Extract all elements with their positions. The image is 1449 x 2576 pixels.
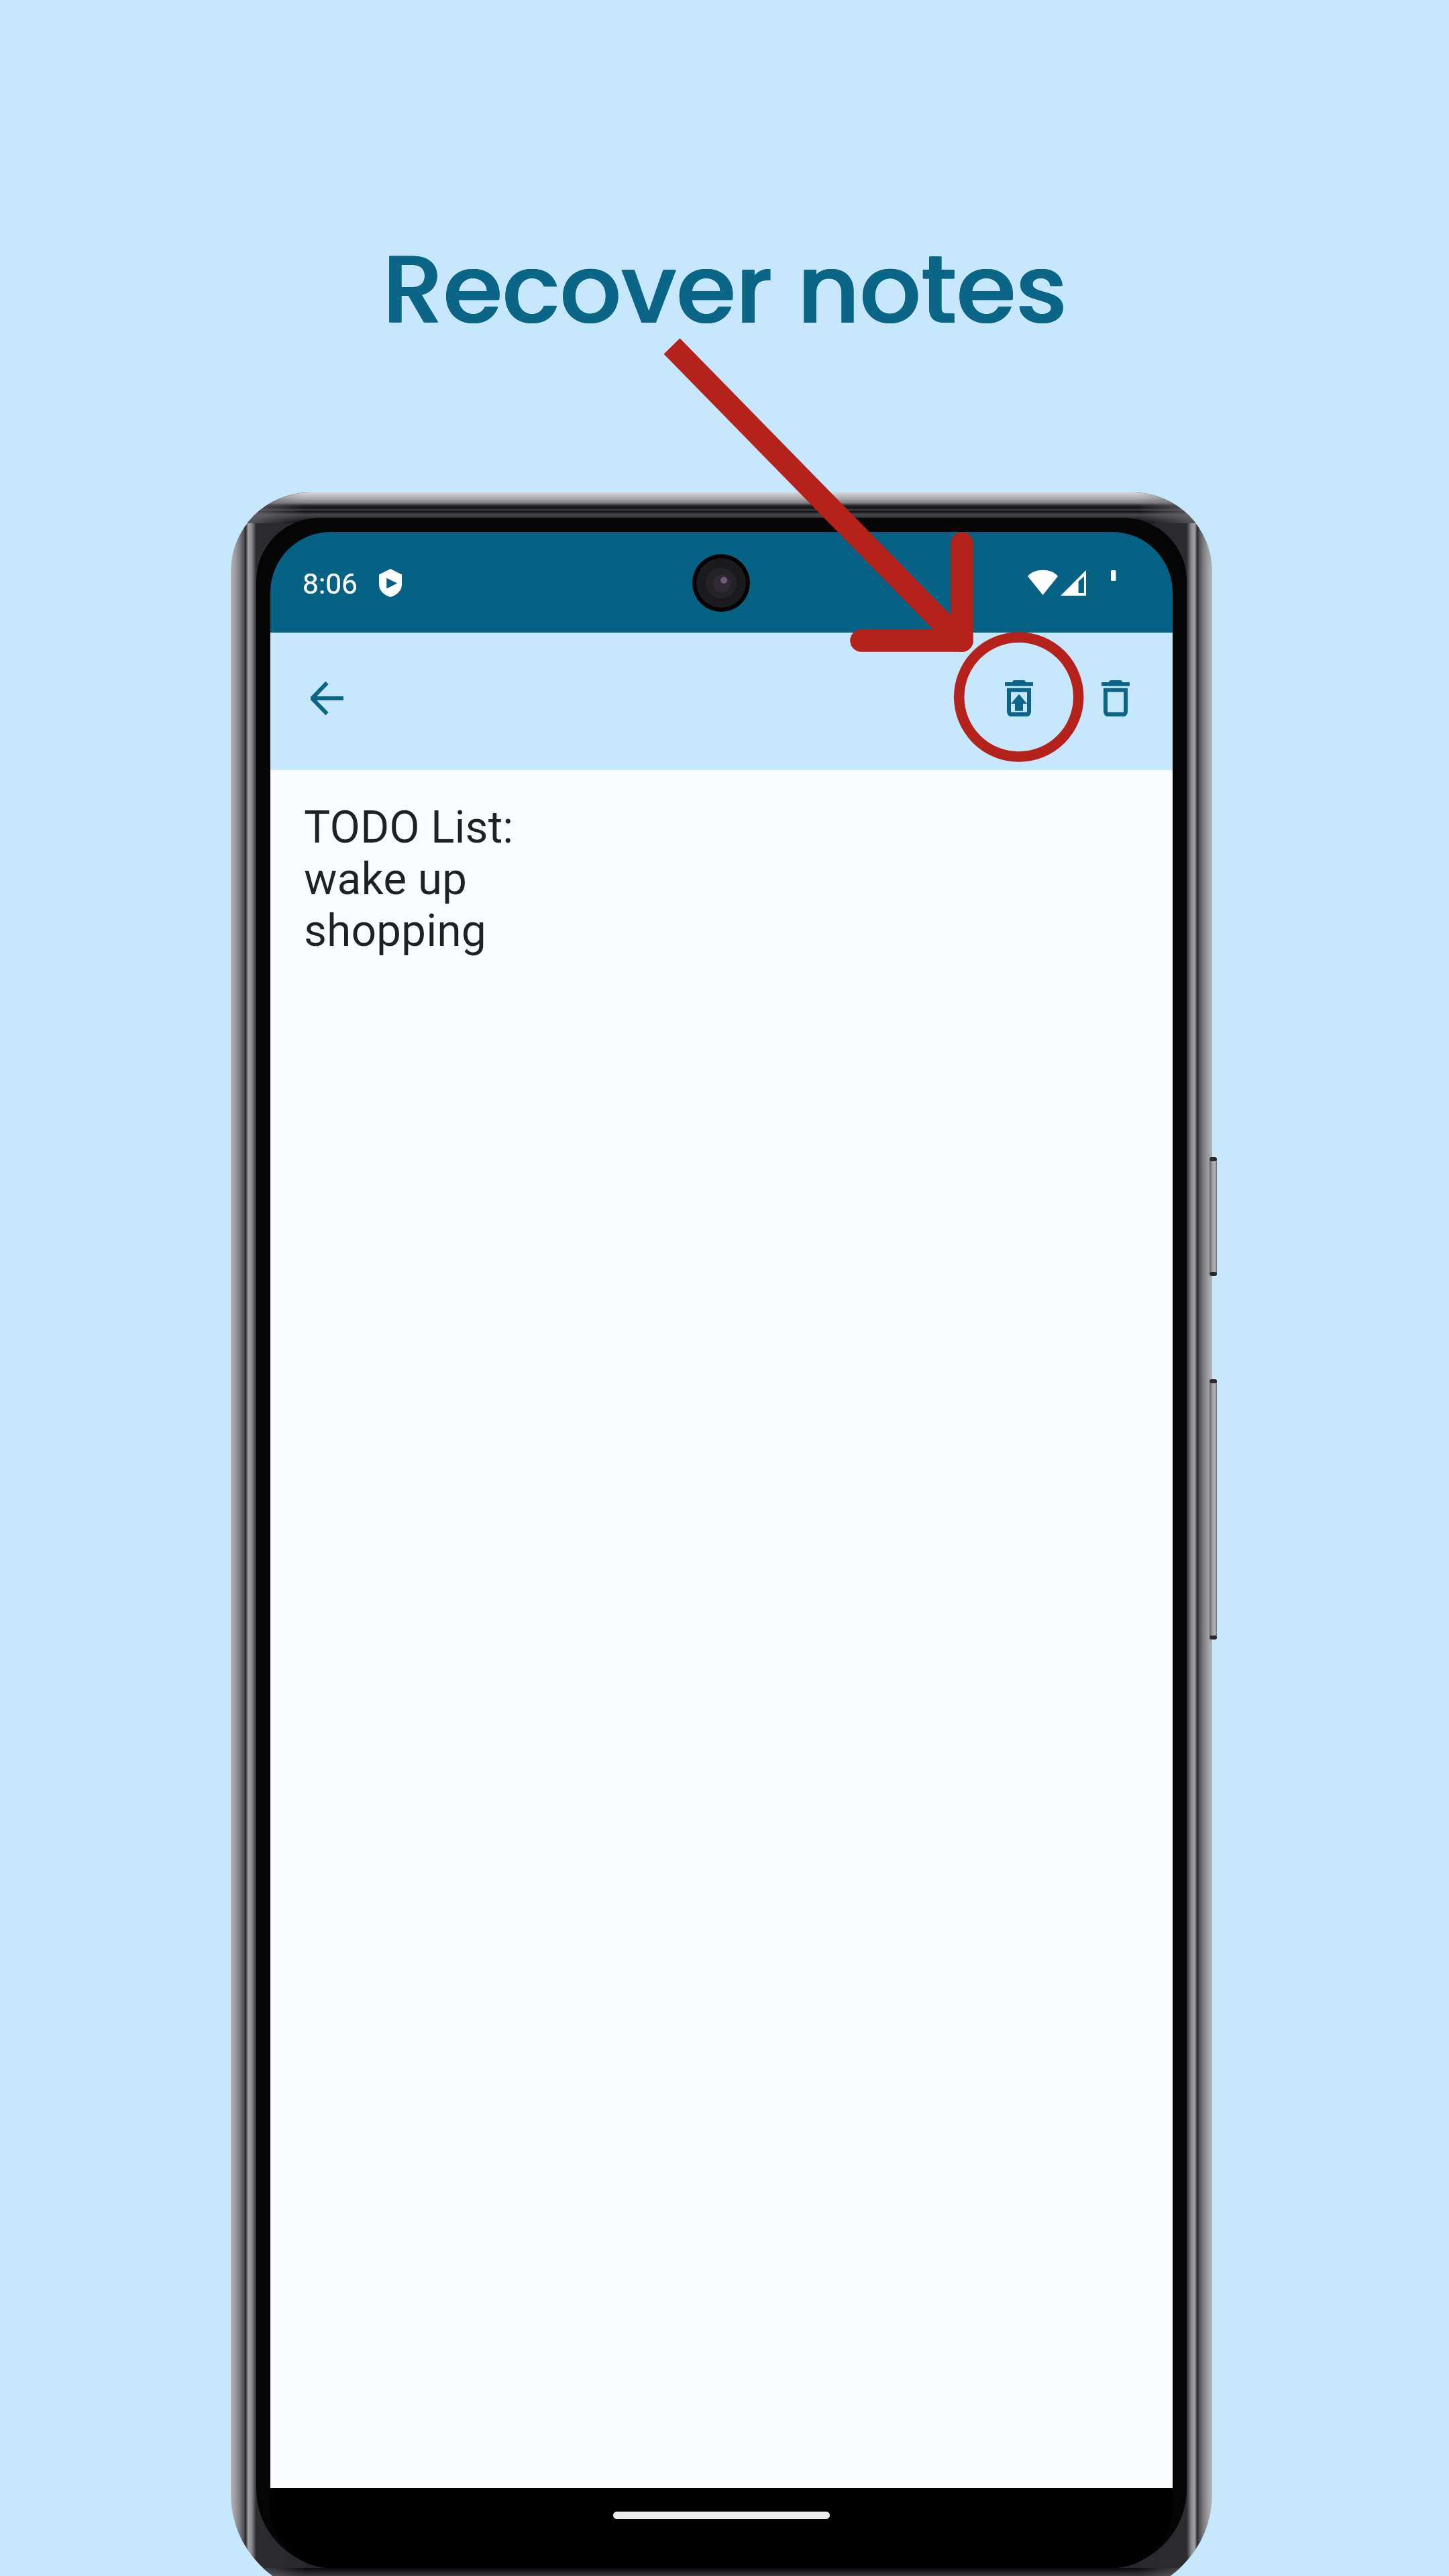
staticText: Recover notes bbox=[382, 222, 1067, 356]
staticText: Recover notes bbox=[383, 222, 1068, 356]
button[interactable]: Note body bbox=[270, 770, 1173, 2488]
button[interactable]: Back bbox=[282, 654, 371, 743]
staticText: 8:06 bbox=[303, 568, 358, 601]
staticText: TODO List: wake up shopping bbox=[304, 802, 514, 957]
button[interactable]: Restore note bbox=[975, 654, 1063, 743]
button[interactable]: Delete forever bbox=[1071, 654, 1160, 743]
staticText: Recover notes bbox=[383, 222, 1068, 356]
staticText: Recover notes bbox=[382, 222, 1067, 356]
